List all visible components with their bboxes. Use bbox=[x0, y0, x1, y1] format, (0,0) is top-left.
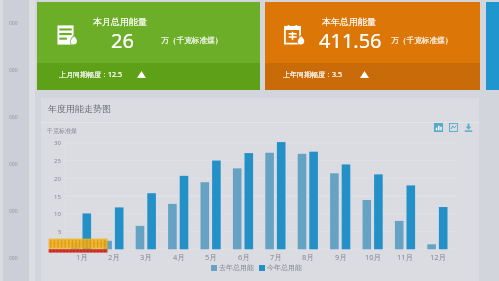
staticText: 25 bbox=[54, 157, 61, 165]
staticText: 本月总用能量 bbox=[93, 16, 147, 27]
staticText: 20 bbox=[54, 175, 61, 183]
button[interactable]: Bar chart view bbox=[434, 123, 443, 132]
staticText: 6月 bbox=[238, 252, 250, 262]
staticText: 上月同期幅度：12.5 bbox=[59, 70, 122, 80]
staticText: 9月 bbox=[335, 252, 347, 262]
staticText: 10月 bbox=[365, 252, 382, 262]
staticText: 10 bbox=[54, 210, 61, 218]
staticText: 去年总用能 bbox=[219, 263, 254, 272]
staticText: 2月 bbox=[108, 252, 120, 262]
staticText: 万（千克标准煤） bbox=[161, 36, 223, 46]
staticText: 5月 bbox=[205, 252, 217, 262]
button[interactable] bbox=[37, 2, 260, 90]
staticText: 本年总用能量 bbox=[322, 16, 376, 27]
staticText: 000 bbox=[9, 20, 18, 27]
staticText: 000 bbox=[9, 255, 18, 262]
staticText: 今年总用能 bbox=[267, 263, 302, 272]
button[interactable] bbox=[265, 2, 480, 90]
staticText: 1月 bbox=[76, 252, 88, 262]
staticText: 5 bbox=[58, 228, 62, 236]
staticText: 411.56 bbox=[319, 27, 382, 54]
staticText: 4月 bbox=[173, 252, 185, 262]
staticText: 15 bbox=[54, 193, 61, 201]
staticText: 000 bbox=[9, 67, 18, 74]
staticText: 万（千克标准煤） bbox=[391, 36, 453, 46]
staticText: 年度用能走势图 bbox=[48, 103, 111, 114]
staticText: 26 bbox=[111, 27, 134, 54]
button[interactable]: Line chart view bbox=[449, 123, 458, 132]
staticText: 000 bbox=[9, 161, 18, 168]
staticText: 7月 bbox=[270, 252, 282, 262]
staticText: 000 bbox=[9, 114, 18, 121]
staticText: 8月 bbox=[302, 252, 314, 262]
staticText: 上年同期幅度：3.5 bbox=[283, 70, 342, 80]
staticText: 11月 bbox=[397, 252, 414, 262]
staticText: 3月 bbox=[140, 252, 152, 262]
staticText: 30 bbox=[54, 139, 61, 147]
staticText: 000 bbox=[9, 208, 18, 215]
staticText: 千克标准煤 bbox=[47, 127, 77, 135]
staticText: 12月 bbox=[430, 252, 447, 262]
button[interactable]: Download bbox=[464, 123, 473, 132]
